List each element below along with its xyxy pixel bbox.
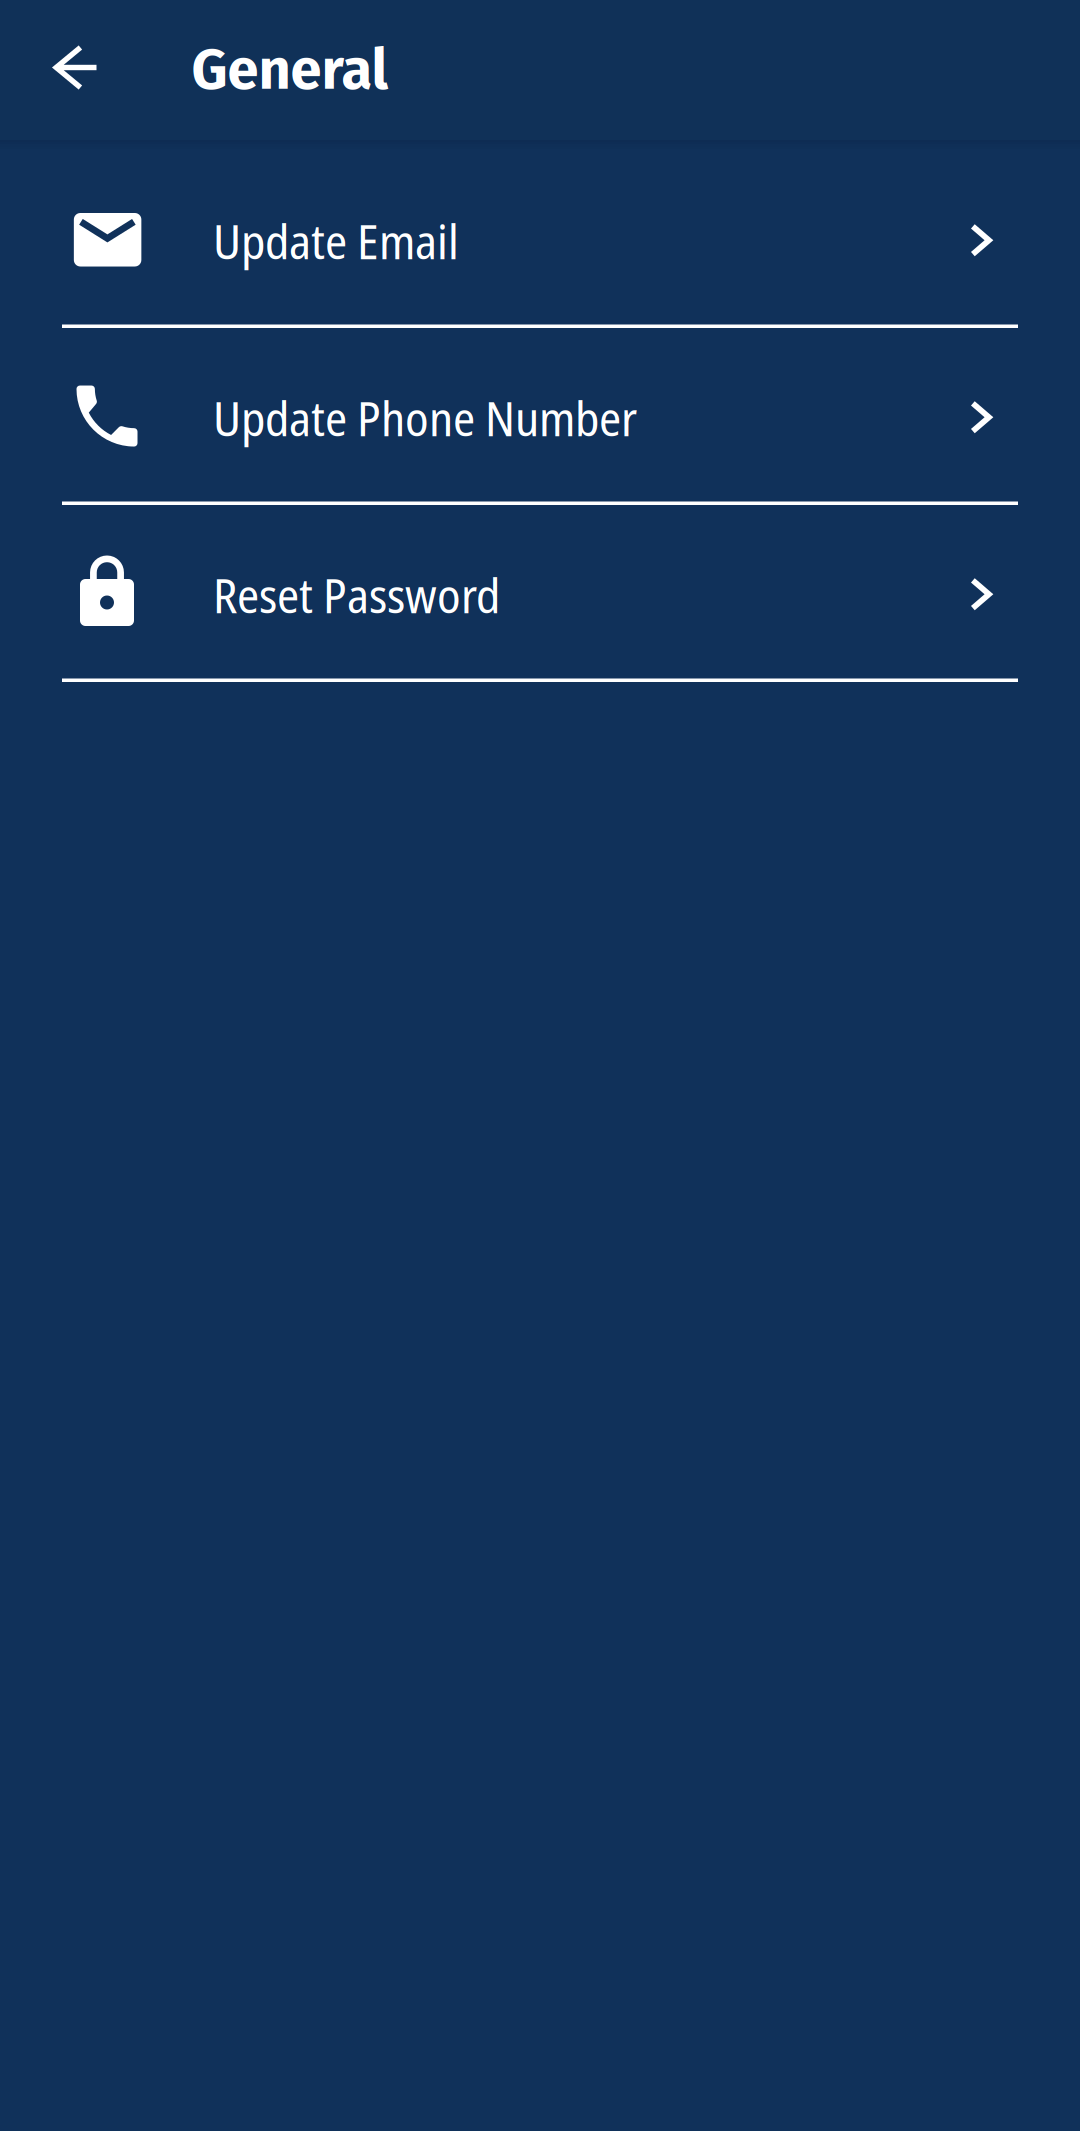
button[interactable]: Update Email bbox=[0, 151, 1080, 328]
staticText: Update Phone Number bbox=[213, 385, 637, 450]
button[interactable]: Reset Password bbox=[0, 505, 1080, 682]
button[interactable]: Back bbox=[27, 0, 123, 140]
button[interactable]: Update Phone Number bbox=[0, 328, 1080, 505]
staticText: Update Email bbox=[213, 208, 459, 273]
staticText: General bbox=[191, 36, 388, 104]
staticText: Reset Password bbox=[213, 562, 500, 627]
